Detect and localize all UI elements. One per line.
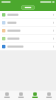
button[interactable]: Me [42, 90, 56, 100]
button[interactable]: List item [0, 27, 56, 35]
button[interactable]: Discover [28, 90, 42, 100]
button[interactable]: Chats [0, 90, 14, 100]
button[interactable]: List item [0, 11, 56, 19]
button[interactable]: Search [21, 6, 34, 9]
button[interactable]: List item [0, 43, 56, 50]
button[interactable]: Contacts [14, 90, 28, 100]
button[interactable]: List item [0, 35, 56, 43]
button[interactable]: List item [0, 19, 56, 27]
